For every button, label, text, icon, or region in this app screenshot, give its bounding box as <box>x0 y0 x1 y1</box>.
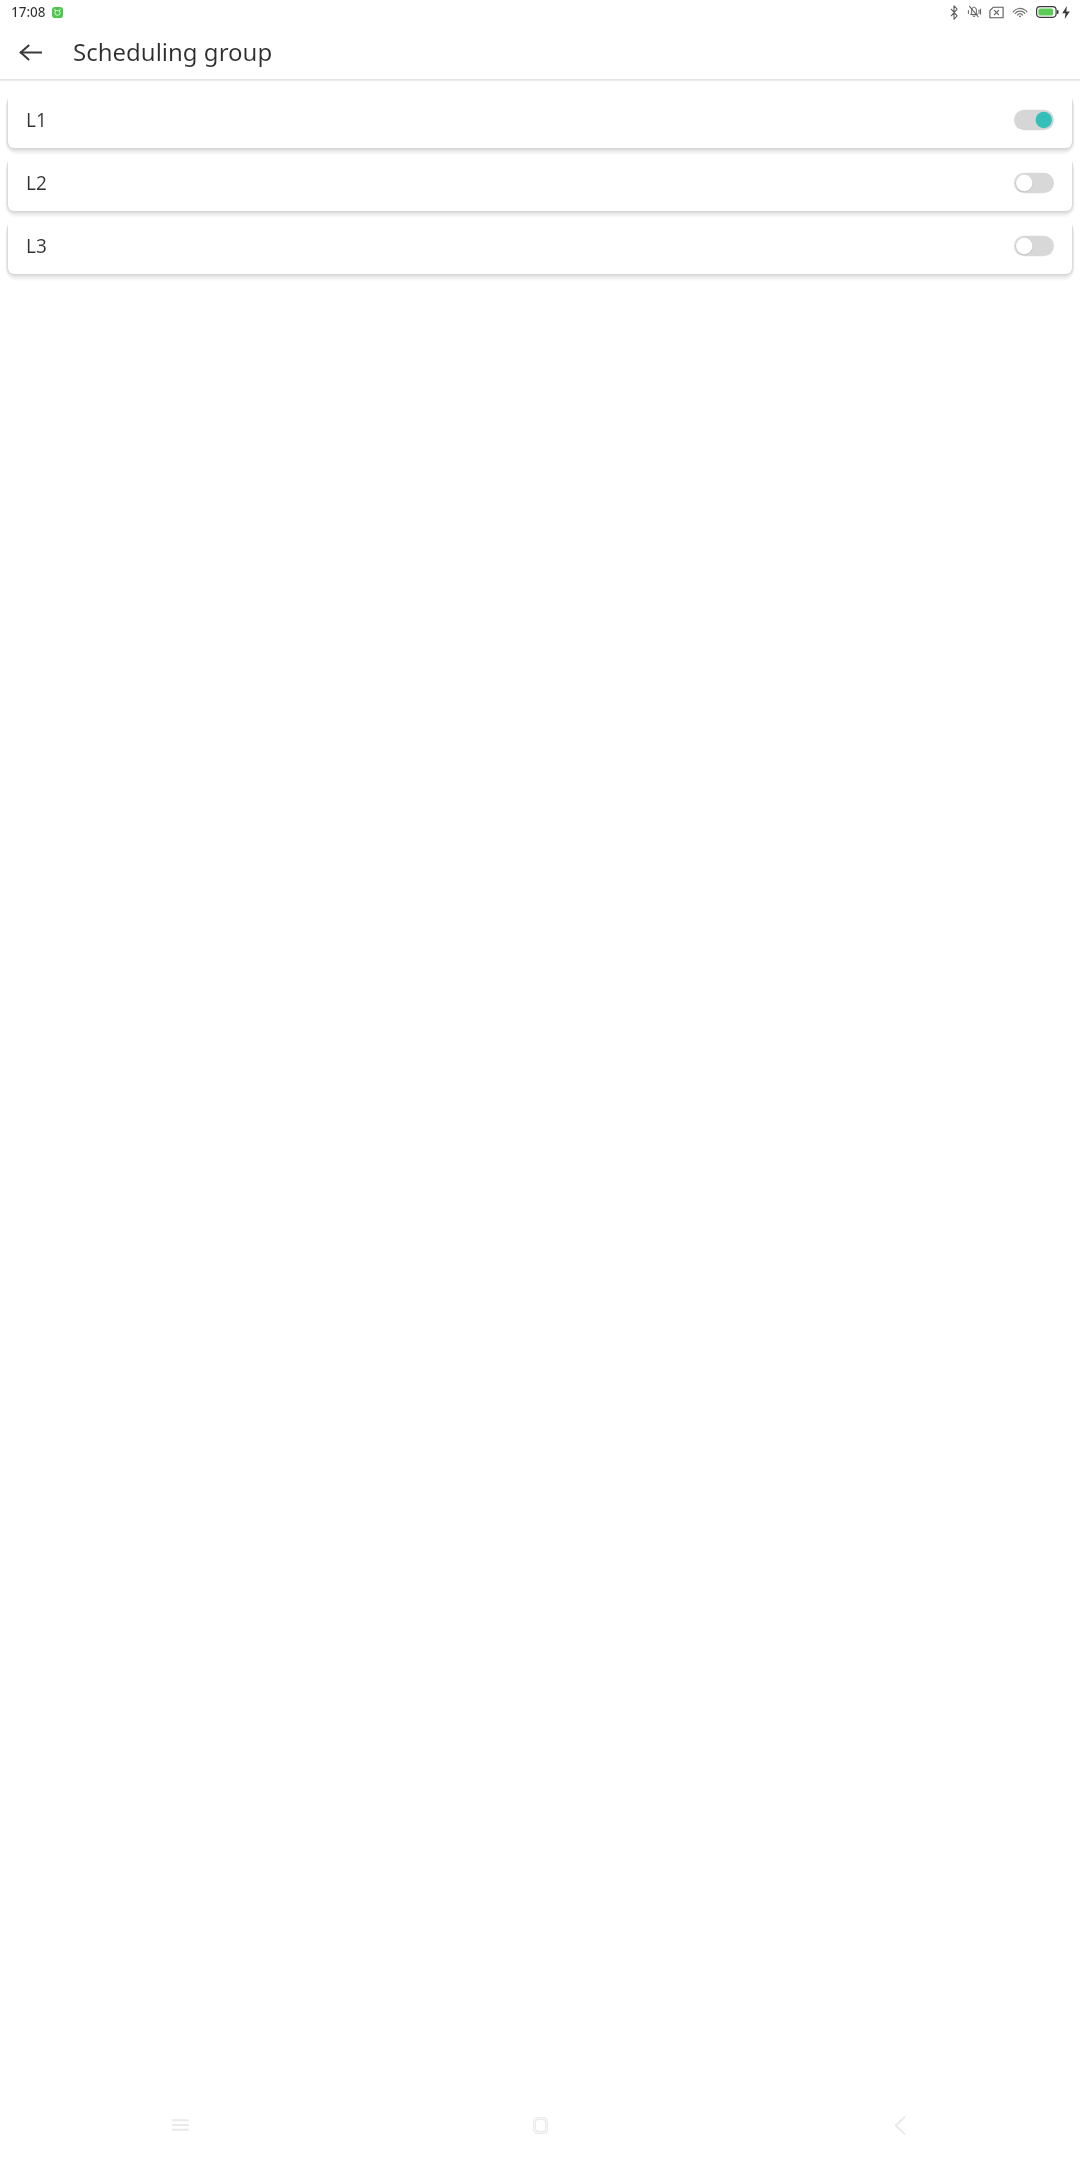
button[interactable]: On <box>1014 109 1054 131</box>
button[interactable]: L3 <box>8 218 1072 274</box>
button[interactable]: L1 <box>8 92 1072 148</box>
staticText: Scheduling group <box>73 35 273 68</box>
button[interactable]: Off <box>1014 172 1054 194</box>
staticText: L1 <box>26 107 47 133</box>
button[interactable]: L2 <box>8 155 1072 211</box>
staticText: L2 <box>26 170 47 196</box>
staticText: L3 <box>26 233 47 259</box>
staticText: 17:08 <box>11 3 46 21</box>
button[interactable]: Off <box>1014 235 1054 257</box>
button[interactable]: Back <box>6 28 54 76</box>
